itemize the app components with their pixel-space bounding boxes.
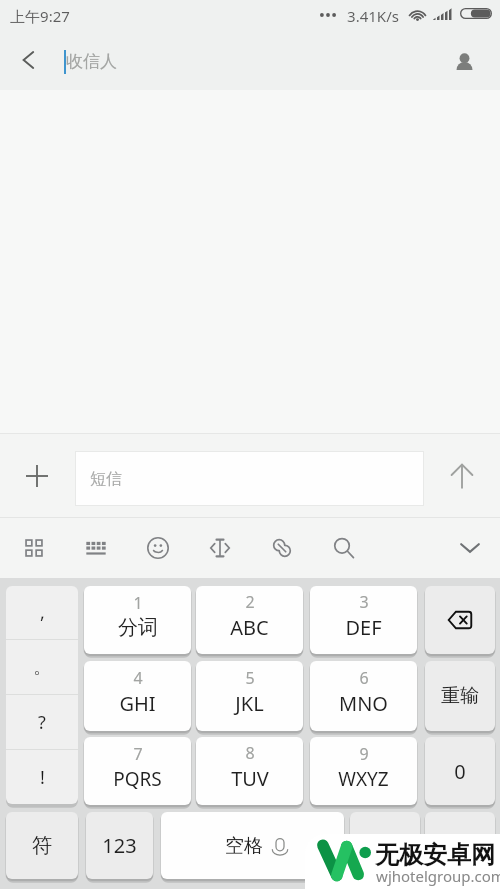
staticText: 7 [133,743,143,765]
button[interactable]: Back [5,37,51,83]
staticText: PQRS [113,766,162,792]
button[interactable]: 重输 [425,661,495,731]
button[interactable]: 123 [86,812,153,879]
button[interactable]: Emoji [137,527,179,569]
staticText: 符 [32,833,52,858]
staticText: 8 [245,742,255,764]
button[interactable]: Backspace [425,586,495,654]
button[interactable]: 4 [84,661,191,731]
staticText: 。 [33,656,51,679]
button[interactable]: 7 [84,737,191,805]
button[interactable]: Send [439,453,485,499]
button[interactable]: Newline [350,812,420,879]
staticText: 重输 [441,684,479,708]
staticText: 分词 [118,615,158,640]
button[interactable]: 5 [196,661,303,731]
staticText: GHI [119,690,156,717]
button[interactable]: 。 [6,640,78,694]
button[interactable]: 2 [196,586,303,654]
staticText: 1 [133,592,143,614]
button[interactable]: Link [261,527,303,569]
staticText: 无极安卓网 [375,840,495,870]
staticText: 6 [359,667,369,689]
staticText: MNO [339,690,388,717]
button[interactable]: Apps [13,527,55,569]
button[interactable]: 短信 [76,452,423,505]
staticText: JKL [235,690,264,717]
button[interactable]: Add attachment [14,453,60,499]
button[interactable]: Search [323,527,365,569]
staticText: 4 [133,667,143,689]
button[interactable]: 空格 [161,812,344,879]
button[interactable]: 6 [310,661,417,731]
staticText: 短信 [90,469,122,489]
staticText: 3.41K/s [347,6,399,26]
button[interactable]: 8 [196,737,303,805]
button[interactable]: Keyboard [75,527,117,569]
staticText: ! [40,765,45,790]
button[interactable]: 9 [310,737,417,805]
button[interactable]: 1 [84,586,191,654]
button[interactable]: Move cursor [199,527,241,569]
button[interactable]: , [6,586,78,639]
staticText: wjhotelgroup.com [376,866,500,886]
staticText: WXYZ [338,766,389,792]
staticText: 3 [359,591,369,613]
staticText: 9 [359,743,369,765]
button[interactable]: ! [6,750,78,804]
button[interactable]: ? [6,695,78,749]
staticText: DEF [345,614,382,641]
button[interactable]: Contacts [441,39,487,85]
button[interactable]: 0 [425,737,495,805]
button[interactable]: 3 [310,586,417,654]
button[interactable]: 收信人 [64,33,244,90]
staticText: 2 [245,591,255,613]
staticText: 空格 [225,834,263,858]
button[interactable] [425,812,495,879]
staticText: ? [38,710,46,735]
staticText: TUV [231,765,269,792]
staticText: 123 [102,832,137,859]
staticText: , [40,600,45,625]
button[interactable]: Hide keyboard [449,527,491,569]
staticText: 上午9:27 [10,6,70,26]
staticText: ABC [230,614,269,641]
staticText: 收信人 [66,51,117,72]
staticText: 0 [454,758,466,785]
staticText: 5 [245,667,255,689]
button[interactable]: 符 [6,812,78,879]
